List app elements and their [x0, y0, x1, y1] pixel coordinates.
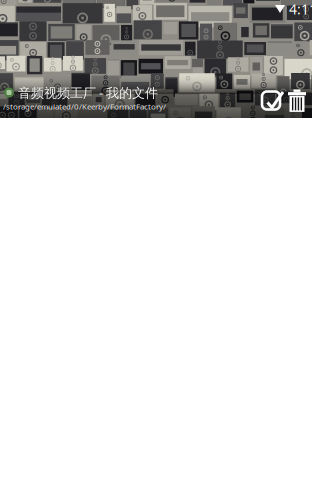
- staticText: 4:11: [289, 0, 312, 19]
- staticText: /storage/emulated/0/Keerby/FormatFactory…: [3, 101, 166, 112]
- staticText: 音频视频工厂 - 我的文件: [18, 84, 158, 101]
- button[interactable]: Select all: [260, 84, 285, 111]
- button[interactable]: Delete: [286, 84, 308, 111]
